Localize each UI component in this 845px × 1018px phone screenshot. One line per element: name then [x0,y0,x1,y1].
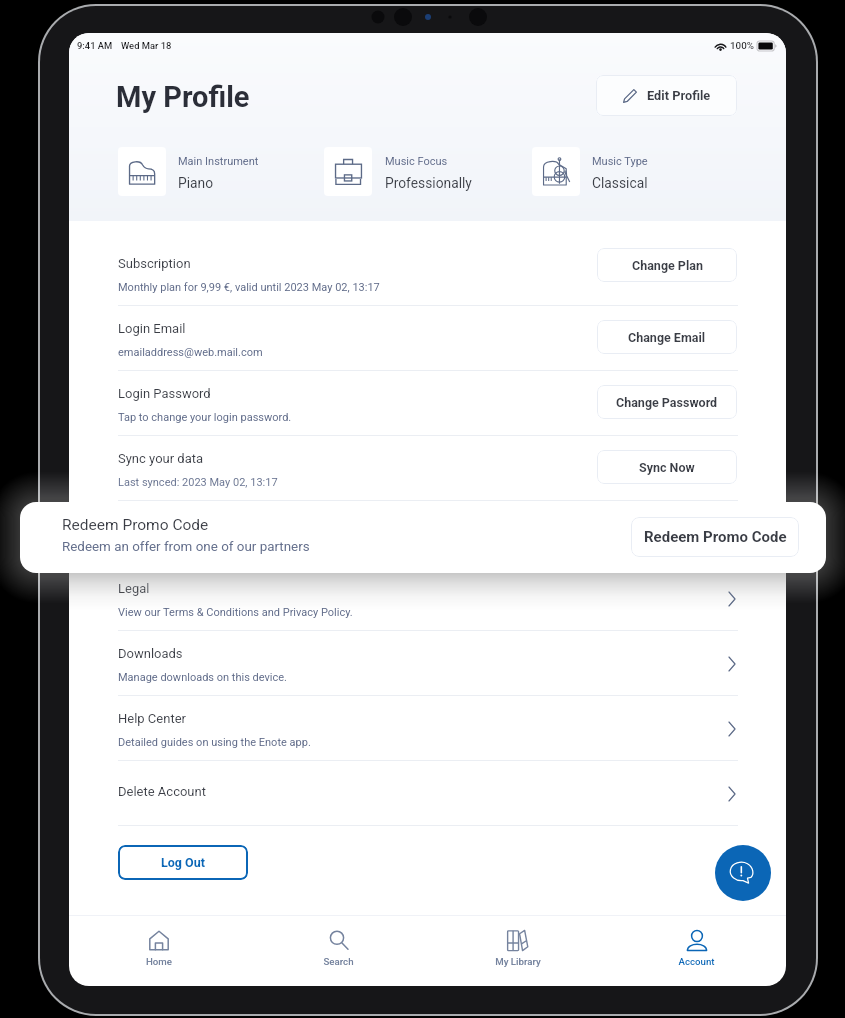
button[interactable]: Home [69,916,249,986]
staticText: My Profile [116,80,250,114]
button[interactable]: Legal [69,566,786,631]
staticText: Log Out [161,855,205,870]
button[interactable]: Redeem Promo Code [631,517,799,557]
staticText: Subscription [118,256,191,271]
button[interactable]: My Library [428,916,607,986]
staticText: Sync your data [118,451,204,466]
staticText: Redeem Promo Code [644,528,787,546]
staticText: 9:41 AM [77,40,113,51]
button[interactable]: Delete Account [69,761,786,826]
staticText: Delete Account [118,784,206,799]
button[interactable]: Help Center [69,696,786,761]
staticText: Home [146,956,172,967]
staticText: Piano [178,175,214,191]
staticText: Redeem Promo Code [62,516,209,534]
button[interactable]: Redeem Promo Code [20,502,826,573]
staticText: Wed Mar 18 [121,40,172,51]
staticText: Main Instrument [178,155,259,168]
button[interactable]: Edit Profile [596,75,737,116]
staticText: Sync Now [639,460,695,475]
staticText: 100% [730,40,754,51]
button[interactable]: Change Plan [597,248,737,282]
staticText: Music Focus [385,155,448,168]
button[interactable]: Help and support [715,845,771,901]
staticText: Detailed guides on using the Enote app. [118,736,311,749]
staticText: Change Plan [632,258,703,273]
staticText: Search [323,956,354,967]
button[interactable]: Search [249,916,428,986]
staticText: Music Type [592,155,648,168]
button[interactable]: Sync Now [597,450,737,484]
staticText: Login Email [118,321,186,336]
staticText: Account [678,956,715,967]
staticText: Edit Profile [647,88,711,103]
staticText: My Library [495,956,541,967]
staticText: Professionally [385,175,472,191]
staticText: View our Terms & Conditions and Privacy … [118,606,353,619]
staticText: emailaddress@web.mail.com [118,346,263,359]
button[interactable]: Log Out [118,845,248,880]
button[interactable]: Redeem Promo Code [597,515,737,549]
staticText: Classical [592,175,648,191]
staticText: Monthly plan for 9,99 €, valid until 202… [118,281,380,294]
staticText: Downloads [118,646,183,661]
staticText: Change Password [616,395,718,410]
staticText: Redeem an offer from one of our partners [62,539,310,555]
staticText: Last synced: 2023 May 02, 13:17 [118,476,278,489]
staticText: Legal [118,581,150,596]
staticText: Redeem Promo Code [608,525,727,540]
staticText: Tap to change your login password. [118,411,292,424]
button[interactable]: Change Password [597,385,737,419]
button[interactable]: Change Email [597,320,737,354]
button[interactable]: Downloads [69,631,786,696]
staticText: Change Email [628,330,706,345]
staticText: Redeem Promo Code [118,516,241,531]
button[interactable]: Account [607,916,786,986]
staticText: Manage downloads on this device. [118,671,288,684]
staticText: Help Center [118,711,186,726]
staticText: Login Password [118,386,211,401]
staticText: Redeem an offer from one of our partners [118,541,322,554]
